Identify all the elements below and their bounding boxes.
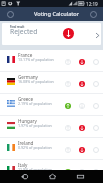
button[interactable]: Hungary — [0, 116, 103, 138]
button[interactable]: Navigate up — [3, 7, 17, 21]
button[interactable]: Germany — [0, 72, 103, 94]
button[interactable]: Vote in favour — [63, 145, 72, 154]
button[interactable]: Vote in favour — [63, 123, 72, 132]
button[interactable]: Vote against — [77, 167, 86, 176]
button[interactable]: Abstain — [91, 123, 100, 132]
button[interactable]: Vote in favour — [63, 167, 72, 176]
staticText: Hungary — [18, 118, 37, 124]
button[interactable]: Abstain — [91, 57, 100, 66]
button[interactable]: France — [0, 50, 103, 72]
staticText: 11.9% of population — [18, 167, 52, 172]
staticText: 0.92% of population — [18, 145, 52, 150]
button[interactable]: Vote against — [77, 145, 86, 154]
button[interactable]: Vote in favour — [63, 79, 72, 88]
button[interactable]: Vote against — [77, 57, 86, 66]
staticText: 13.17% of population — [18, 57, 54, 62]
button[interactable]: Vote against — [77, 101, 86, 110]
button[interactable]: Vote in favour — [63, 57, 72, 66]
button[interactable]: Final result — [2, 23, 101, 45]
staticText: Germany — [18, 74, 38, 80]
staticText: 12:19 — [86, 1, 98, 7]
button[interactable]: Vote against — [77, 79, 86, 88]
staticText: France — [18, 52, 33, 58]
staticText: Rejected — [10, 27, 38, 36]
staticText: 16.08% of population — [18, 79, 54, 84]
staticText: 2.19% of population — [18, 101, 52, 106]
button[interactable]: Abstain — [91, 79, 100, 88]
button[interactable]: Home — [42, 170, 62, 183]
button[interactable]: Help — [86, 7, 100, 21]
button[interactable]: Abstain — [91, 167, 100, 176]
staticText: Greece — [18, 96, 34, 102]
button[interactable]: Abstain — [91, 101, 100, 110]
button[interactable]: Abstain — [91, 145, 100, 154]
button[interactable]: Recent apps — [70, 170, 90, 183]
button[interactable]: Vote in favour — [63, 101, 72, 110]
staticText: Voting Calculator — [34, 10, 79, 18]
button[interactable]: Vote against — [77, 123, 86, 132]
staticText: Final result — [10, 25, 25, 29]
button[interactable]: Back — [14, 170, 34, 183]
button[interactable]: Italy — [0, 160, 103, 182]
staticText: Ireland — [18, 140, 34, 146]
button[interactable]: Ireland — [0, 138, 103, 160]
staticText: Italy — [18, 162, 28, 168]
staticText: 1.97% of population — [18, 123, 52, 128]
button[interactable]: Greece — [0, 94, 103, 116]
